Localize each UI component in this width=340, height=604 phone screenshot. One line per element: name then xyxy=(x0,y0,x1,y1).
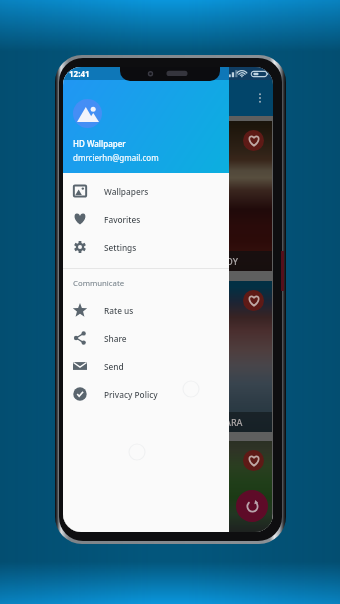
button[interactable]: Share xyxy=(63,324,229,352)
button[interactable]: Favorite xyxy=(243,450,264,471)
button[interactable]: Favorite xyxy=(64,281,272,432)
staticText: Favorites xyxy=(104,214,141,225)
button[interactable]: Privacy Policy xyxy=(63,380,229,408)
staticText: Privacy Policy xyxy=(104,389,158,400)
button[interactable]: Favorite xyxy=(64,121,272,271)
staticText: Wallpapers xyxy=(104,186,149,197)
staticText: HD Wallpaper xyxy=(73,138,126,149)
staticText: Share xyxy=(104,333,127,344)
button[interactable]: Settings xyxy=(63,233,229,261)
button[interactable]: Favorite xyxy=(243,130,264,151)
button[interactable]: Favorite xyxy=(243,290,264,311)
button[interactable]: Rate us xyxy=(63,296,229,324)
button[interactable]: Favorite xyxy=(64,441,272,532)
staticText: Communicate xyxy=(73,278,125,289)
button[interactable]: Send xyxy=(63,352,229,380)
button[interactable]: Wallpapers xyxy=(63,177,229,205)
staticText: Rate us xyxy=(104,305,134,316)
staticText: dmrcierhn@gmail.com xyxy=(73,152,159,163)
button[interactable]: More options xyxy=(250,88,270,108)
staticText: COWBOY xyxy=(199,255,239,267)
staticText: Send xyxy=(104,361,124,372)
staticText: 12:41 xyxy=(69,68,90,79)
button[interactable]: Refresh xyxy=(236,490,268,522)
button[interactable]: Favorites xyxy=(63,205,229,233)
staticText: Settings xyxy=(104,242,137,253)
staticText: ARA xyxy=(225,416,243,428)
